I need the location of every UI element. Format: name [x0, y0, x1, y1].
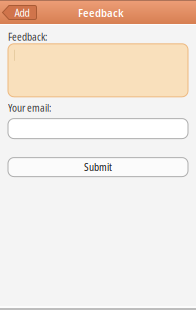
button[interactable]: Add [2, 5, 37, 20]
staticText: Submit [84, 160, 112, 174]
staticText: Add [14, 5, 29, 20]
staticText: Feedback: [8, 30, 47, 44]
staticText: Your email: [8, 101, 51, 115]
button[interactable]: Submit [0, 158, 196, 177]
staticText: Feedback [78, 5, 124, 20]
